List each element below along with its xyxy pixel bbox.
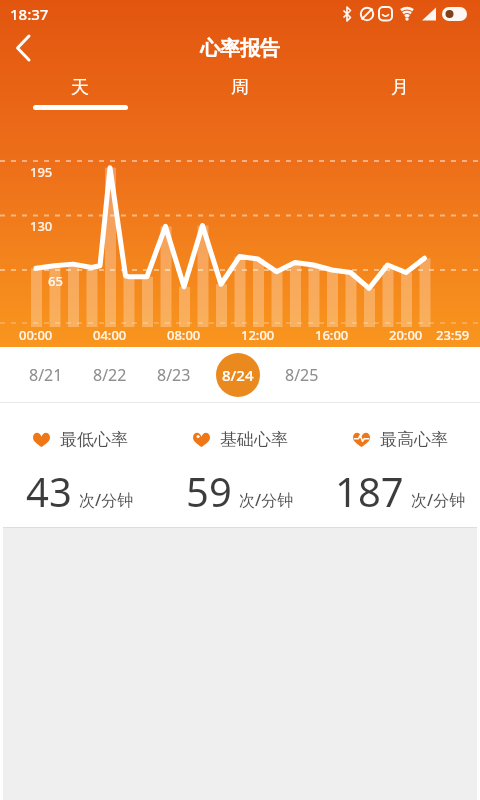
staticText: 04:00 bbox=[93, 326, 127, 344]
staticText: 65 bbox=[48, 272, 63, 290]
button[interactable] bbox=[0, 28, 44, 68]
staticText: 187 bbox=[335, 464, 404, 518]
staticText: 43 bbox=[26, 464, 72, 518]
staticText: 12:00 bbox=[241, 326, 275, 344]
staticText: 次/分钟 bbox=[79, 489, 134, 511]
button[interactable]: 天 bbox=[0, 68, 160, 110]
button[interactable]: 8/21 bbox=[14, 347, 78, 402]
button[interactable]: 8/22 bbox=[78, 347, 142, 402]
staticText: 最高心率 bbox=[380, 429, 448, 450]
button[interactable]: 8/25 bbox=[270, 347, 334, 402]
staticText: 08:00 bbox=[167, 326, 201, 344]
staticText: 月 bbox=[391, 76, 409, 99]
staticText: 20:00 bbox=[389, 326, 423, 344]
staticText: 心率报告 bbox=[200, 36, 280, 61]
staticText: 00:00 bbox=[19, 326, 53, 344]
staticText: 59 bbox=[186, 464, 232, 518]
staticText: 18:37 bbox=[10, 4, 49, 24]
staticText: 最低心率 bbox=[60, 429, 128, 450]
staticText: 8/24 bbox=[222, 365, 254, 385]
button[interactable]: 月 bbox=[320, 68, 480, 110]
staticText: 16:00 bbox=[315, 326, 349, 344]
button[interactable]: 周 bbox=[160, 68, 320, 110]
staticText: 8/22 bbox=[93, 364, 127, 386]
staticText: 23:59 bbox=[436, 326, 470, 344]
staticText: 8/25 bbox=[285, 364, 319, 386]
staticText: 195 bbox=[30, 163, 53, 181]
staticText: 天 bbox=[71, 76, 89, 99]
staticText: 8/21 bbox=[29, 364, 63, 386]
staticText: 基础心率 bbox=[220, 429, 288, 450]
staticText: 次/分钟 bbox=[411, 489, 466, 511]
staticText: 次/分钟 bbox=[239, 489, 294, 511]
staticText: 130 bbox=[30, 217, 53, 235]
button[interactable]: 8/23 bbox=[142, 347, 206, 402]
staticText: 8/23 bbox=[157, 364, 191, 386]
staticText: 周 bbox=[231, 76, 249, 99]
button[interactable]: 8/24 bbox=[206, 347, 270, 402]
